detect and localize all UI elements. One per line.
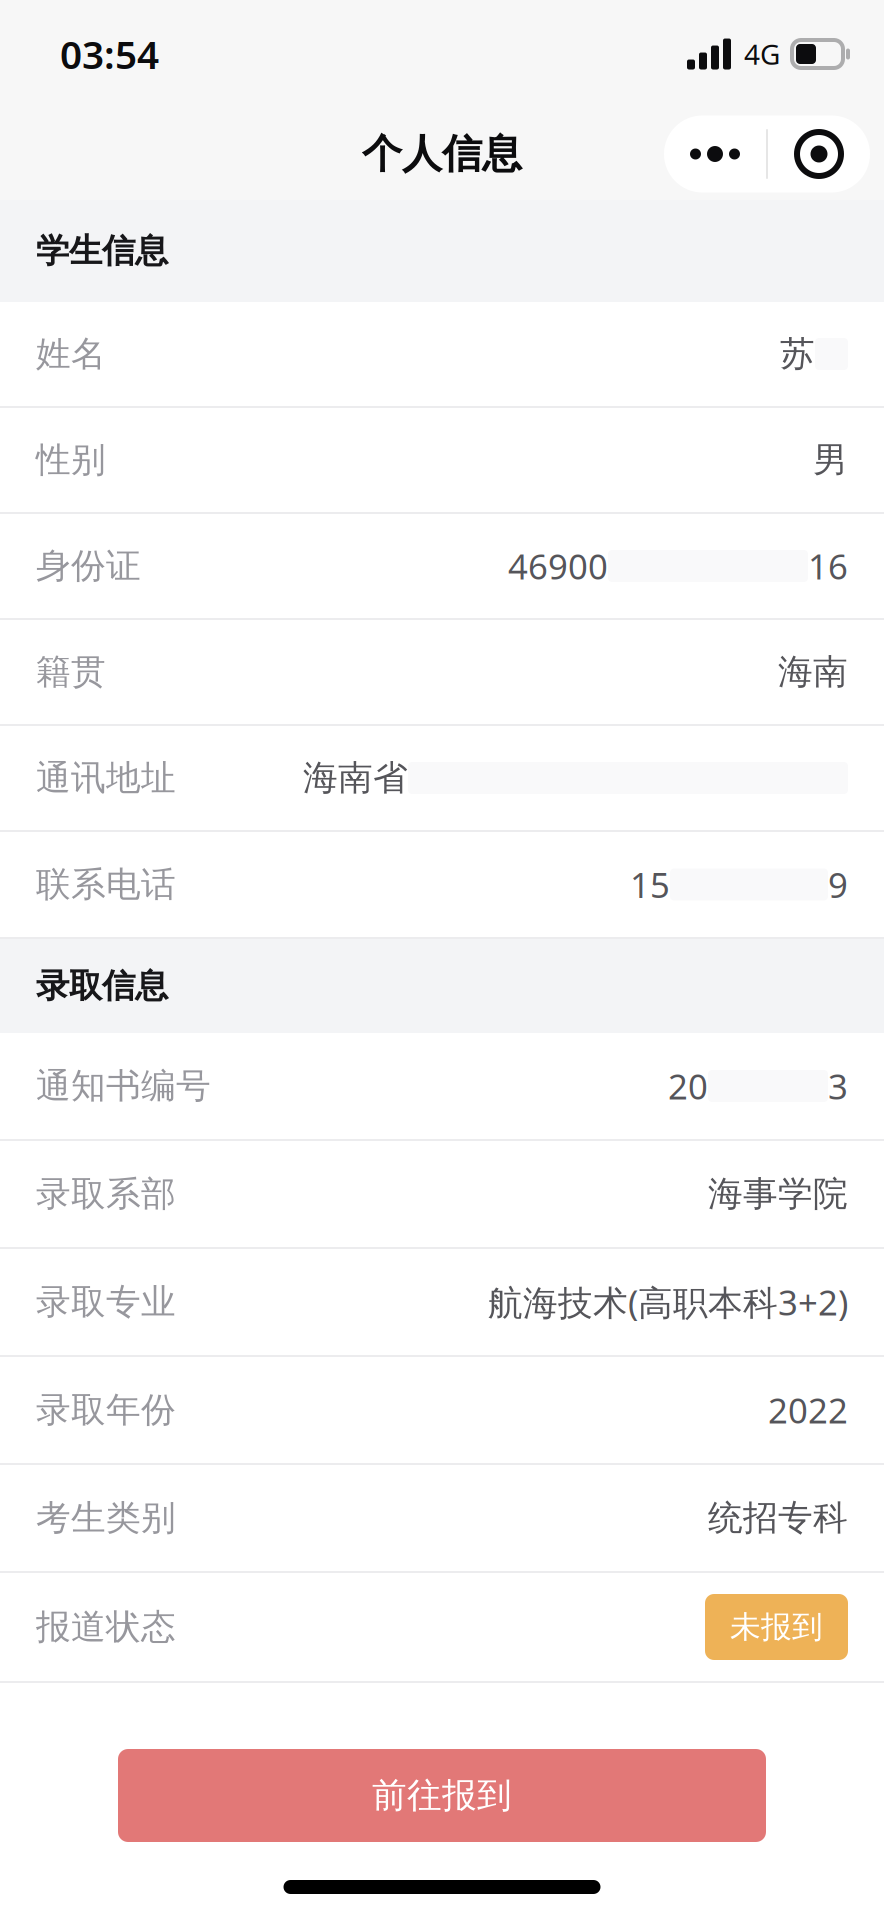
button[interactable]: 未报到 [705, 1594, 848, 1660]
staticText: 个人信息 [362, 129, 522, 178]
staticText: 通讯地址 [36, 757, 176, 799]
staticText: 海南 [778, 651, 848, 693]
staticText: 未报到 [730, 1608, 823, 1646]
button[interactable]: 籍贯 [0, 620, 884, 726]
button[interactable]: 通讯地址 [0, 726, 884, 832]
button[interactable]: 联系电话 [0, 832, 884, 939]
staticText: 苏 [780, 333, 815, 375]
staticText: 海事学院 [708, 1173, 848, 1215]
staticText: 海南省 [303, 757, 408, 799]
staticText: 身份证 [36, 545, 141, 587]
button[interactable]: 录取专业 [0, 1249, 884, 1357]
staticText: 联系电话 [36, 863, 176, 906]
staticText: 15 [630, 861, 670, 907]
staticText: 录取信息 [36, 965, 168, 1006]
staticText: 通知书编号 [36, 1065, 211, 1107]
button[interactable]: 前往报到 [118, 1749, 766, 1842]
button[interactable]: 考生类别 [0, 1465, 884, 1573]
staticText: 报道状态 [36, 1606, 176, 1648]
button[interactable]: 录取年份 [0, 1357, 884, 1465]
staticText: 籍贯 [36, 651, 106, 693]
button[interactable]: 身份证 [0, 514, 884, 620]
button[interactable]: Close mini program [768, 115, 870, 192]
staticText: 录取年份 [36, 1389, 176, 1431]
staticText: 性别 [36, 439, 106, 481]
staticText: 姓名 [36, 333, 106, 375]
staticText: 录取系部 [36, 1173, 176, 1215]
staticText: 统招专科 [708, 1497, 848, 1539]
button[interactable]: 性别 [0, 408, 884, 514]
staticText: 学生信息 [36, 230, 168, 271]
button[interactable]: More options [664, 115, 766, 192]
staticText: 20 [668, 1063, 708, 1109]
staticText: 9 [828, 861, 848, 907]
staticText: 录取专业 [36, 1281, 176, 1323]
staticText: 男 [813, 439, 848, 481]
button[interactable]: 姓名 [0, 302, 884, 408]
staticText: 03:54 [60, 28, 159, 80]
staticText: 航海技术(高职本科3+2) [488, 1279, 848, 1325]
staticText: 前往报到 [372, 1774, 512, 1817]
button[interactable]: 通知书编号 [0, 1033, 884, 1141]
staticText: 2022 [768, 1387, 848, 1433]
staticText: 16 [808, 543, 848, 589]
staticText: 46900 [508, 543, 608, 589]
staticText: 考生类别 [36, 1497, 176, 1539]
staticText: 4G [744, 35, 780, 73]
staticText: 3 [828, 1063, 848, 1109]
button[interactable]: 录取系部 [0, 1141, 884, 1249]
